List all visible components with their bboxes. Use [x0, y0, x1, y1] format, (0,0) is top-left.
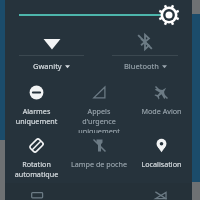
button[interactable]: Lampe de poche [68, 133, 130, 183]
staticText: Lampe de poche [71, 159, 127, 169]
button[interactable]: Rotation automatique [5, 133, 68, 183]
staticText: Appels d'urgence uniquement [70, 106, 128, 133]
staticText: Localisation [141, 159, 182, 169]
button[interactable]: Appels d'urgence uniquement [68, 80, 130, 133]
staticText: Rotation automatique [7, 159, 66, 179]
staticText: Bluetooth [124, 61, 159, 71]
button[interactable]: Localisation [130, 133, 192, 183]
staticText: Mode Avion [141, 106, 182, 116]
button[interactable]: Tile [5, 183, 68, 200]
staticText: Alarmes uniquement [7, 106, 66, 126]
staticText: Gwanity [33, 61, 62, 71]
button[interactable]: Mode Avion [130, 80, 192, 133]
button[interactable]: Bluetooth [98, 30, 192, 80]
button[interactable]: Alarmes uniquement [5, 80, 68, 133]
button[interactable]: Brightness [5, 0, 192, 30]
button[interactable]: Tile [130, 183, 192, 200]
button[interactable]: Gwanity [5, 30, 98, 80]
